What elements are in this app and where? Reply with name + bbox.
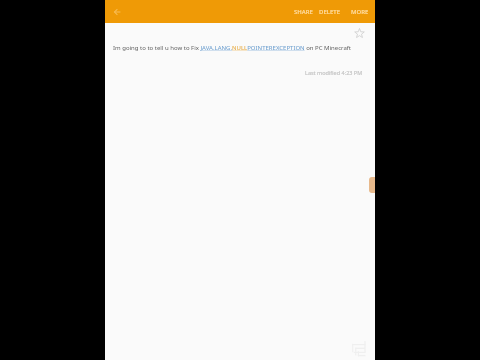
staticText: MORE [351, 8, 369, 16]
staticText: DELETE [319, 8, 340, 16]
staticText: Im going to to tell u how to Fix JAVA.LA… [113, 44, 352, 52]
button[interactable]: DELETE [318, 5, 341, 19]
button[interactable]: Back [109, 4, 125, 20]
staticText: SHARE [294, 8, 313, 16]
button[interactable]: Favorite [353, 27, 366, 40]
button[interactable]: Watermark [351, 337, 370, 360]
staticText: Last modified 4:23 PM [305, 69, 363, 76]
button[interactable]: MORE [350, 5, 370, 19]
button[interactable]: SHARE [293, 5, 314, 19]
